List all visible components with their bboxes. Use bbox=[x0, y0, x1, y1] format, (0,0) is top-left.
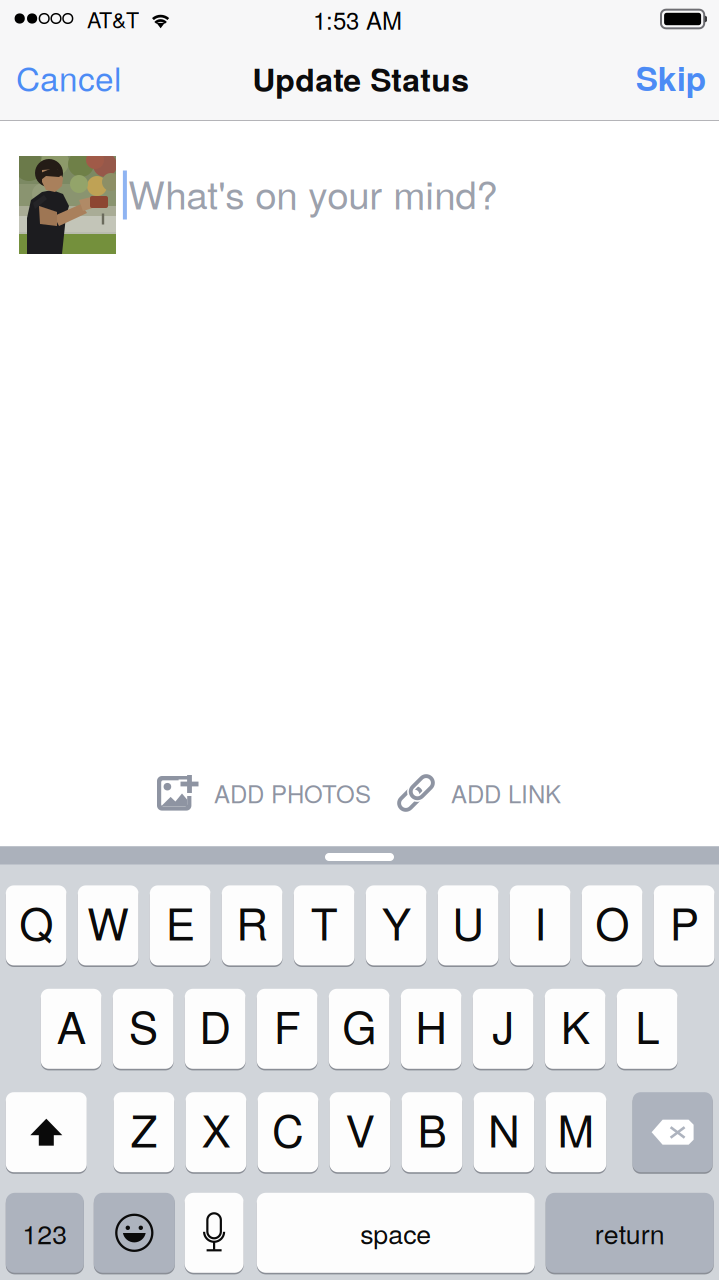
button[interactable]: C bbox=[258, 1091, 318, 1173]
staticText: P bbox=[670, 890, 699, 953]
staticText: Z bbox=[130, 1097, 157, 1160]
staticText: 123 bbox=[22, 1214, 67, 1252]
button[interactable]: space bbox=[257, 1192, 535, 1274]
button[interactable]: J bbox=[473, 988, 533, 1070]
button[interactable]: S bbox=[113, 988, 173, 1070]
button[interactable]: R bbox=[222, 885, 282, 966]
staticText: C bbox=[272, 1097, 304, 1160]
staticText: Q bbox=[19, 890, 53, 953]
staticText: S bbox=[129, 993, 158, 1056]
button[interactable]: ADD PHOTOS bbox=[157, 763, 371, 822]
button[interactable]: Skip bbox=[622, 39, 719, 115]
staticText: E bbox=[166, 890, 195, 953]
staticText: I bbox=[534, 890, 546, 953]
staticText: R bbox=[236, 890, 268, 953]
staticText: Y bbox=[382, 890, 411, 953]
staticText: ADD PHOTOS bbox=[214, 776, 371, 810]
button[interactable]: Q bbox=[6, 885, 66, 966]
button[interactable]: Y bbox=[366, 885, 426, 966]
button[interactable]: K bbox=[545, 988, 605, 1070]
staticText: L bbox=[635, 993, 659, 1056]
button[interactable]: A bbox=[41, 988, 101, 1070]
button[interactable]: B bbox=[402, 1091, 462, 1173]
button[interactable]: E bbox=[150, 885, 210, 966]
button[interactable]: O bbox=[582, 885, 642, 966]
button[interactable]: Cancel bbox=[0, 39, 141, 115]
staticText: N bbox=[488, 1097, 520, 1160]
button[interactable]: H bbox=[401, 988, 461, 1070]
staticText: V bbox=[345, 1097, 374, 1160]
staticText: AT&T bbox=[87, 3, 139, 34]
staticText: 1:53 AM bbox=[313, 2, 402, 37]
button[interactable]: Dictate bbox=[185, 1192, 244, 1274]
button[interactable]: I bbox=[510, 885, 570, 966]
staticText: M bbox=[557, 1097, 594, 1160]
button[interactable]: Numbers bbox=[6, 1192, 84, 1274]
staticText: X bbox=[201, 1097, 230, 1160]
staticText: Update Status bbox=[252, 56, 469, 101]
staticText: F bbox=[274, 993, 301, 1056]
button[interactable]: F bbox=[257, 988, 317, 1070]
button[interactable]: T bbox=[294, 885, 354, 966]
staticText: J bbox=[492, 993, 514, 1056]
button[interactable]: N bbox=[474, 1091, 534, 1173]
button[interactable]: Z bbox=[114, 1091, 174, 1173]
button[interactable]: return bbox=[546, 1192, 714, 1274]
staticText: T bbox=[311, 890, 338, 953]
staticText: What's on your mind? bbox=[128, 165, 497, 220]
staticText: K bbox=[561, 993, 590, 1056]
button[interactable]: U bbox=[438, 885, 498, 966]
staticText: Skip bbox=[636, 53, 706, 101]
button[interactable]: M bbox=[546, 1091, 606, 1173]
button[interactable]: L bbox=[617, 988, 677, 1070]
button[interactable]: X bbox=[186, 1091, 246, 1173]
button[interactable]: Delete bbox=[633, 1091, 713, 1173]
staticText: B bbox=[417, 1097, 446, 1160]
button[interactable]: V bbox=[330, 1091, 390, 1173]
button[interactable]: D bbox=[185, 988, 245, 1070]
button[interactable]: P bbox=[654, 885, 714, 966]
button[interactable]: Shift bbox=[6, 1091, 87, 1173]
button[interactable]: W bbox=[78, 885, 138, 966]
staticText: D bbox=[199, 993, 231, 1056]
staticText: space bbox=[360, 1214, 431, 1252]
staticText: U bbox=[452, 890, 484, 953]
staticText: H bbox=[415, 993, 447, 1056]
staticText: W bbox=[87, 890, 129, 953]
staticText: G bbox=[342, 993, 376, 1056]
staticText: Cancel bbox=[16, 53, 121, 101]
staticText: A bbox=[57, 993, 86, 1056]
staticText: O bbox=[595, 890, 629, 953]
button[interactable]: G bbox=[329, 988, 389, 1070]
button[interactable]: Emoji bbox=[94, 1192, 175, 1274]
staticText: return bbox=[595, 1214, 665, 1252]
staticText: ADD LINK bbox=[451, 776, 561, 810]
button[interactable]: ADD LINK bbox=[397, 762, 561, 824]
